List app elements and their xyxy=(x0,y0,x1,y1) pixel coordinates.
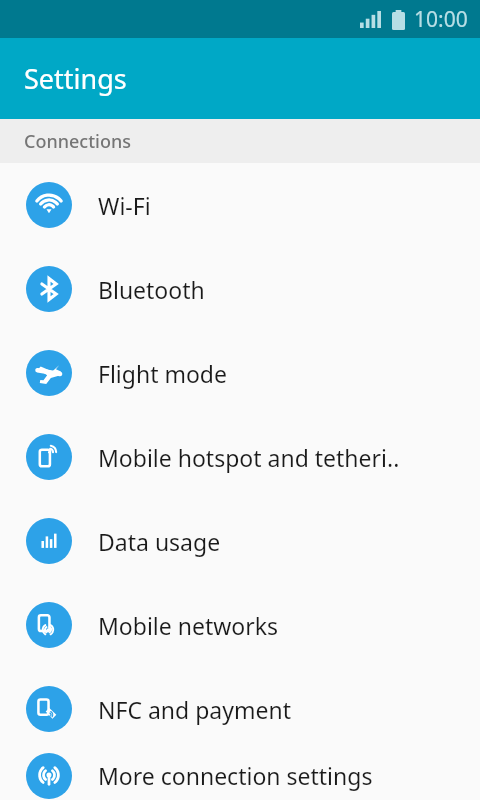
staticText: Connections xyxy=(24,129,131,154)
staticText: Mobile hotspot and tetheri.. xyxy=(98,442,400,473)
staticText: NFC and payment xyxy=(98,694,291,725)
button[interactable]: Mobile hotspot and tetheri.. xyxy=(0,415,480,499)
button[interactable]: Mobile networks xyxy=(0,583,480,667)
staticText: Mobile networks xyxy=(98,610,279,641)
staticText: Settings xyxy=(24,60,127,97)
staticText: Flight mode xyxy=(98,358,227,389)
button[interactable]: More connection settings xyxy=(0,751,480,800)
button[interactable]: NFC and payment xyxy=(0,667,480,751)
button[interactable]: Data usage xyxy=(0,499,480,583)
button[interactable]: Wi-Fi xyxy=(0,163,480,247)
staticText: Wi-Fi xyxy=(98,190,151,221)
button[interactable]: Flight mode xyxy=(0,331,480,415)
staticText: Bluetooth xyxy=(98,274,205,305)
staticText: 10:00 xyxy=(414,5,468,34)
button[interactable]: Bluetooth xyxy=(0,247,480,331)
staticText: Data usage xyxy=(98,526,221,557)
staticText: More connection settings xyxy=(98,760,373,791)
